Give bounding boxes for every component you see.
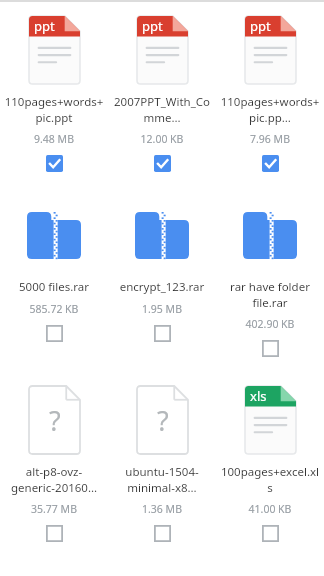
button[interactable]: Selected (46, 155, 63, 172)
button[interactable]: Selected (154, 155, 171, 172)
button[interactable]: rar have folder file.rar (216, 189, 324, 374)
staticText: ppt (34, 17, 55, 35)
button[interactable]: 5000 files.rar (0, 189, 108, 374)
button[interactable]: Not selected (154, 325, 171, 342)
staticText: alt-p8-ovz-generic-20160… (3, 464, 105, 495)
staticText: 1.36 MB (111, 502, 213, 516)
staticText: ppt (142, 17, 163, 35)
staticText: 1.95 MB (111, 302, 213, 316)
staticText: xls (250, 387, 267, 405)
staticText: 110pages+words+pic.pp… (219, 94, 321, 125)
staticText: 12.00 KB (111, 132, 213, 146)
button[interactable]: encrypt_123.rar (108, 189, 216, 374)
staticText: 110pages+words+pic.ppt (3, 94, 105, 125)
staticText: 402.90 KB (219, 317, 321, 331)
button[interactable]: Not selected (46, 325, 63, 342)
staticText: encrypt_123.rar (111, 279, 213, 295)
button[interactable]: Not selected (154, 525, 171, 542)
button[interactable]: ppt (0, 4, 108, 189)
staticText: 100pages+excel.xls (219, 464, 321, 495)
button[interactable]: Not selected (262, 340, 279, 357)
button[interactable]: Not selected (46, 525, 63, 542)
staticText: ppt (250, 17, 271, 35)
button[interactable]: xls (216, 374, 324, 559)
button[interactable]: ppt (216, 4, 324, 189)
staticText: 585.72 KB (3, 302, 105, 316)
button[interactable]: ? (0, 374, 108, 559)
button[interactable]: ? (108, 374, 216, 559)
staticText: ? (157, 402, 169, 439)
staticText: 7.96 MB (219, 132, 321, 146)
staticText: 35.77 MB (3, 502, 105, 516)
button[interactable]: ppt (108, 4, 216, 189)
staticText: 2007PPT_With_Comme… (111, 94, 213, 125)
staticText: 9.48 MB (3, 132, 105, 146)
staticText: ? (49, 402, 61, 439)
button[interactable]: Not selected (262, 525, 279, 542)
staticText: 5000 files.rar (3, 279, 105, 295)
staticText: rar have folder file.rar (219, 279, 321, 310)
button[interactable]: Selected (262, 155, 279, 172)
staticText: ubuntu-1504-minimal-x8… (111, 464, 213, 495)
staticText: 41.00 KB (219, 502, 321, 516)
